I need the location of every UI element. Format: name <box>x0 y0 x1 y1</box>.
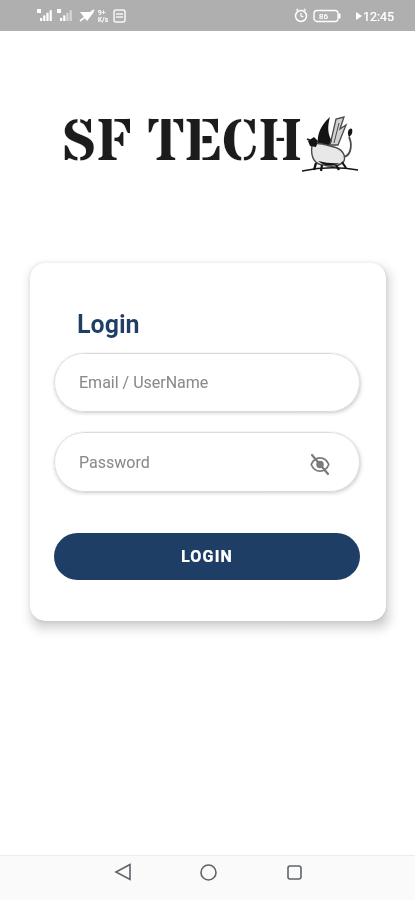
button[interactable] <box>180 855 236 889</box>
button[interactable]: LOGIN <box>54 533 360 580</box>
staticText: Login <box>77 310 140 339</box>
staticText: 86 <box>319 12 328 21</box>
button[interactable] <box>94 855 150 889</box>
staticText: Password <box>79 453 150 472</box>
button[interactable]: Email / UserName <box>54 353 360 412</box>
staticText: Email / UserName <box>79 373 209 392</box>
staticText: 12:45 <box>363 9 395 24</box>
button[interactable] <box>266 855 322 889</box>
staticText: SF TECH <box>62 104 303 184</box>
staticText: LOGIN <box>181 547 234 566</box>
staticText: 9+ K/s <box>98 9 109 23</box>
button[interactable]: Password <box>54 432 360 492</box>
